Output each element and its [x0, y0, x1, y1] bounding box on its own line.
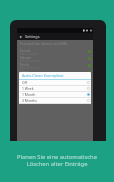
button[interactable]: Back	[19, 35, 23, 39]
staticText: Planen Sie eine automatische Löschen alt…	[17, 153, 97, 168]
button[interactable]: Off	[19, 80, 91, 86]
staticText: 1 Week	[22, 86, 34, 91]
staticText: 3 Months	[22, 98, 37, 103]
button[interactable]: Sound	[17, 48, 93, 55]
button[interactable]: Vibrate	[17, 55, 93, 62]
staticText: Settings	[25, 34, 40, 39]
button[interactable]: Notify	[17, 62, 93, 69]
staticText: 1 Month	[22, 92, 36, 97]
staticText: Show a notice	[20, 66, 40, 69]
button[interactable]: 1 Month	[19, 92, 91, 98]
staticText: Vibrate	[20, 55, 32, 59]
button[interactable]: 3 Months	[19, 98, 91, 104]
staticText: Off	[22, 80, 27, 85]
staticText: Sound	[20, 48, 30, 52]
staticText: Protokoll der Anrufe und SMS	[20, 41, 68, 46]
staticText: Auto-clean logs	[20, 73, 42, 76]
staticText: Play a sound	[20, 52, 38, 55]
staticText: Auto-Clean Exemplare	[22, 73, 64, 78]
staticText: Clean	[20, 69, 29, 73]
button[interactable]: Clean	[17, 69, 93, 76]
button[interactable]: Back	[17, 33, 93, 40]
button[interactable]: 1 Week	[19, 86, 91, 92]
staticText: Notify	[20, 62, 30, 66]
